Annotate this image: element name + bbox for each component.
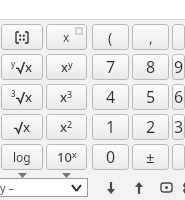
button[interactable]: matrix (1, 24, 43, 50)
staticText: x (25, 88, 33, 106)
button[interactable]: 8 (132, 54, 169, 80)
staticText: 6 (174, 86, 184, 108)
button[interactable]: 1 (92, 114, 129, 140)
staticText: ( (108, 28, 113, 47)
staticText: 2 (146, 116, 156, 138)
staticText: 0 (106, 146, 116, 168)
button[interactable] (172, 144, 185, 170)
staticText: 7 (106, 56, 116, 78)
staticText: 4 (106, 86, 116, 108)
staticText: 1 (106, 116, 116, 138)
staticText: 3 (11, 88, 16, 99)
button[interactable]: plus minus (132, 144, 169, 170)
staticText: x2 (60, 118, 73, 136)
button[interactable]: Move down (102, 179, 119, 196)
button[interactable]: Keyboard (158, 179, 175, 196)
staticText: x (63, 29, 70, 45)
staticText: x (25, 58, 33, 76)
button[interactable]: ( (92, 24, 129, 50)
button[interactable]: , (132, 24, 169, 50)
staticText: ± (146, 147, 155, 167)
button[interactable]: x box (46, 24, 87, 50)
button[interactable]: 3 (172, 114, 185, 140)
button[interactable]: 0 (92, 144, 129, 170)
staticText: y – (0, 180, 14, 195)
button[interactable]: log (1, 144, 43, 170)
staticText: x (23, 118, 31, 136)
button[interactable]: cube root (1, 84, 43, 110)
staticText: 3 (174, 116, 184, 138)
button[interactable]: y – (0, 178, 88, 197)
button[interactable]: 5 (132, 84, 169, 110)
button[interactable]: 7 (92, 54, 129, 80)
button[interactable]: 2 (132, 114, 169, 140)
staticText: 9 (174, 56, 184, 78)
button[interactable]: square root (1, 114, 43, 140)
button[interactable]: y-th root (1, 54, 43, 80)
button[interactable]: x to the y (46, 54, 87, 80)
button[interactable]: 6 (172, 84, 185, 110)
staticText: 5 (146, 86, 156, 108)
button[interactable]: ten to the x (46, 144, 87, 170)
staticText: 10x (57, 148, 77, 166)
staticText: 8 (146, 56, 156, 78)
staticText: y (11, 58, 16, 69)
button[interactable]: 4 (92, 84, 129, 110)
staticText: x3 (60, 88, 73, 106)
staticText: log (13, 149, 31, 165)
button[interactable]: x squared (46, 114, 87, 140)
staticText: , (149, 28, 153, 47)
button[interactable]: 9 (172, 54, 185, 80)
staticText: xy (61, 58, 73, 76)
button[interactable]: x cubed (46, 84, 87, 110)
button[interactable] (172, 24, 185, 50)
button[interactable]: Move up (130, 179, 147, 196)
